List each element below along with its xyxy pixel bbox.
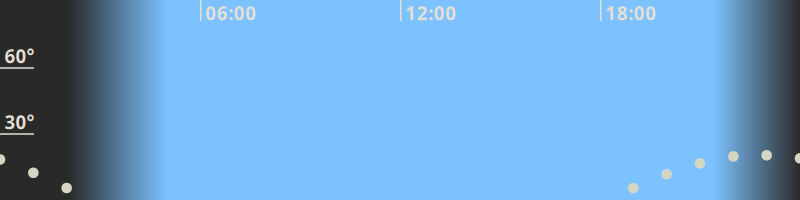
staticText: 60° <box>4 44 34 68</box>
staticText: 12:00 <box>405 1 456 25</box>
staticText: 06:00 <box>205 1 256 25</box>
staticText: 30° <box>4 110 34 134</box>
staticText: 18:00 <box>605 1 656 25</box>
